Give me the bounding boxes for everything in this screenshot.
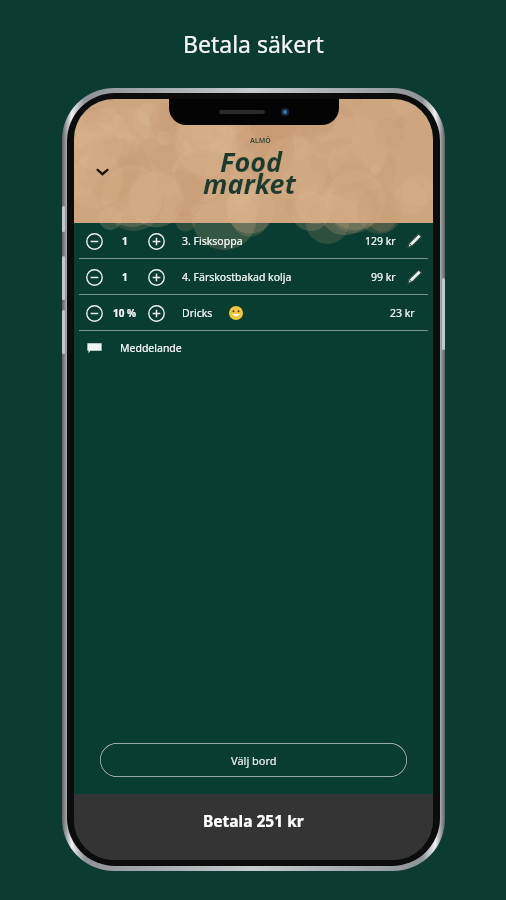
button[interactable]: Meddelande bbox=[74, 331, 433, 365]
staticText: 4. Färskostbakad kolja bbox=[182, 270, 292, 284]
staticText: 99 kr bbox=[371, 270, 396, 284]
staticText: 1 bbox=[122, 270, 128, 284]
staticText: Betala 251 kr bbox=[203, 810, 304, 831]
button[interactable]: Increase quantity bbox=[145, 230, 167, 252]
button[interactable]: Edit item bbox=[405, 231, 424, 250]
button[interactable]: Decrease quantity bbox=[74, 295, 433, 330]
button[interactable]: Decrease quantity bbox=[74, 223, 433, 258]
button[interactable]: Increase quantity bbox=[145, 302, 167, 324]
button[interactable]: Collapse bbox=[84, 153, 120, 189]
staticText: Meddelande bbox=[120, 341, 182, 355]
button[interactable]: Decrease quantity bbox=[83, 302, 105, 324]
staticText: 10 % bbox=[113, 306, 137, 320]
button[interactable]: Decrease quantity bbox=[83, 266, 105, 288]
staticText: Välj bord bbox=[231, 753, 277, 768]
staticText: 3. Fisksoppa bbox=[182, 234, 243, 248]
staticText: 23 kr bbox=[390, 306, 415, 320]
button[interactable]: Decrease quantity bbox=[83, 230, 105, 252]
staticText: 1 bbox=[122, 234, 128, 248]
staticText: ALMÖ bbox=[250, 136, 271, 146]
staticText: Dricks bbox=[182, 306, 213, 320]
button[interactable]: Betala 251 kr bbox=[74, 794, 433, 860]
button[interactable]: Decrease quantity bbox=[74, 259, 433, 294]
button[interactable]: Increase quantity bbox=[145, 266, 167, 288]
staticText: Betala säkert bbox=[183, 28, 324, 59]
staticText: Food bbox=[220, 143, 283, 180]
button[interactable]: Edit item bbox=[405, 267, 424, 286]
staticText: 129 kr bbox=[365, 234, 396, 248]
button[interactable]: Välj bord bbox=[100, 743, 407, 777]
staticText: market bbox=[203, 165, 296, 202]
